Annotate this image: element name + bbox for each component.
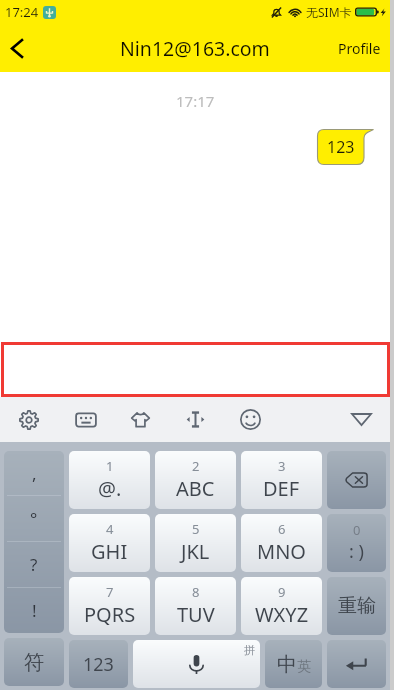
button[interactable]: Hide keyboard: [333, 397, 390, 442]
staticText: 3: [278, 457, 286, 475]
staticText: 17:24: [5, 3, 39, 21]
button[interactable]: 6: [241, 514, 322, 572]
button[interactable]: ,: [4, 451, 64, 633]
staticText: TUV: [177, 601, 215, 628]
staticText: @.: [98, 475, 122, 502]
button[interactable]: Keyboard layout: [58, 397, 113, 442]
button[interactable]: Voice input: [133, 640, 260, 688]
button[interactable]: Profile: [326, 24, 390, 72]
button[interactable]: 1: [69, 451, 150, 509]
button[interactable]: Theme: [113, 397, 168, 442]
staticText: 5: [192, 520, 200, 538]
staticText: : ): [349, 539, 364, 564]
staticText: °: [30, 507, 38, 530]
button[interactable]: 3: [241, 451, 322, 509]
button[interactable]: 5: [155, 514, 236, 572]
button[interactable]: 中: [265, 640, 322, 688]
staticText: 英: [297, 658, 311, 676]
staticText: 重输: [338, 594, 376, 618]
staticText: 9: [278, 583, 286, 601]
staticText: 8: [192, 583, 200, 601]
staticText: ABC: [176, 475, 215, 502]
staticText: 123: [83, 652, 114, 677]
button[interactable]: [1, 342, 390, 397]
button[interactable]: 123: [69, 640, 128, 688]
button[interactable]: 2: [155, 451, 236, 509]
button[interactable]: 9: [241, 577, 322, 635]
button[interactable]: Settings: [0, 397, 58, 442]
staticText: GHI: [91, 538, 128, 565]
button[interactable]: Move cursor: [168, 397, 223, 442]
staticText: WXYZ: [255, 601, 309, 628]
staticText: PQRS: [84, 601, 136, 628]
staticText: MNO: [257, 538, 306, 565]
staticText: 4: [106, 520, 114, 538]
button[interactable]: 0: [327, 514, 386, 572]
button[interactable]: Emoji: [223, 397, 278, 442]
button[interactable]: Enter: [327, 640, 386, 688]
staticText: ,: [32, 462, 37, 485]
staticText: Nin12@163.com: [120, 35, 270, 62]
button[interactable]: 4: [69, 514, 150, 572]
staticText: 123: [327, 136, 355, 158]
staticText: 6: [278, 520, 286, 538]
button[interactable]: 符: [4, 638, 64, 686]
staticText: 拼: [244, 643, 255, 657]
staticText: 无SIM卡: [306, 4, 352, 20]
button[interactable]: 8: [155, 577, 236, 635]
staticText: 符: [24, 650, 44, 675]
staticText: ?: [30, 553, 38, 576]
staticText: 2: [192, 457, 200, 475]
staticText: 0: [353, 521, 361, 539]
button[interactable]: Backspace: [327, 451, 386, 509]
button[interactable]: 重输: [327, 577, 386, 635]
staticText: JKL: [181, 538, 210, 565]
staticText: DEF: [263, 475, 300, 502]
button[interactable]: 7: [69, 577, 150, 635]
staticText: 1: [106, 457, 114, 475]
staticText: 7: [106, 583, 114, 601]
button[interactable]: Back: [0, 24, 34, 72]
staticText: 17:17: [176, 91, 215, 111]
staticText: !: [32, 599, 37, 622]
staticText: 中: [277, 652, 297, 677]
staticText: Profile: [338, 39, 381, 58]
